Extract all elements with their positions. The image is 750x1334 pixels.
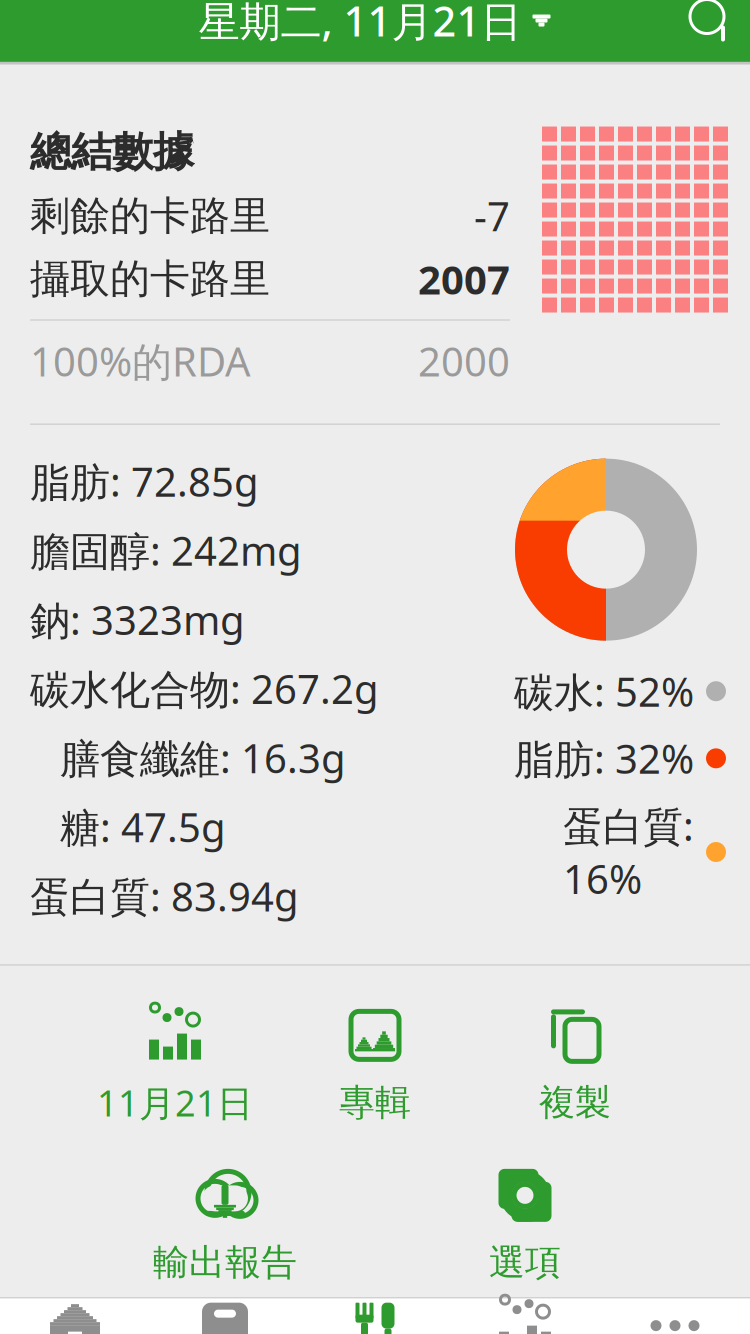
staticText: 專輯: [339, 1080, 411, 1125]
staticText: 碳水化合物: 267.2g: [30, 662, 379, 715]
staticText: 星期二, 11月21日: [198, 0, 521, 48]
button[interactable]: 體重: [150, 1299, 300, 1334]
button[interactable]: 輸出報告: [125, 1159, 325, 1289]
staticText: 膽固醇: 242mg: [30, 524, 302, 577]
staticText: 糖: 47.5g: [60, 800, 226, 853]
button[interactable]: 更多: [600, 1299, 750, 1334]
button[interactable]: 專輯: [275, 999, 475, 1129]
button[interactable]: 首頁: [0, 1299, 150, 1334]
staticText: 膳食纖維: 16.3g: [60, 731, 346, 784]
staticText: 鈉: 3323mg: [30, 593, 245, 646]
staticText: 剩餘的卡路里: [30, 191, 270, 240]
staticText: 11月21日: [97, 1079, 253, 1126]
staticText: 選項: [489, 1240, 561, 1285]
staticText: 100%的RDA: [30, 334, 251, 388]
staticText: 攝取的卡路里: [30, 254, 270, 303]
button[interactable]: 星期二, 11月21日: [188, 0, 561, 56]
staticText: 碳水: 52%: [514, 665, 694, 718]
staticText: 脂肪: 32%: [514, 732, 694, 785]
button[interactable]: 11月21日: [75, 999, 275, 1129]
button[interactable]: 複製: [475, 999, 675, 1129]
button[interactable]: 報告: [450, 1299, 600, 1334]
staticText: 總結數據: [30, 126, 194, 177]
staticText: 脂肪: 72.85g: [30, 455, 259, 508]
staticText: 2007: [418, 252, 510, 305]
button[interactable]: 選項: [425, 1159, 625, 1289]
staticText: 2000: [418, 334, 510, 388]
staticText: 輸出報告: [153, 1240, 297, 1285]
staticText: 複製: [539, 1080, 611, 1125]
button[interactable]: Search: [672, 0, 750, 59]
button[interactable]: 日記: [300, 1299, 450, 1334]
staticText: 蛋白質: 83.94g: [30, 869, 299, 922]
staticText: -7: [474, 189, 510, 242]
staticText: 蛋白質: 16%: [563, 799, 694, 905]
